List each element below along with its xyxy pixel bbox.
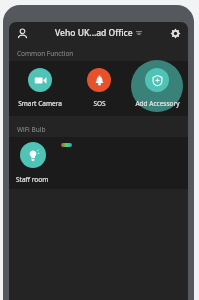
button[interactable]: Settings <box>166 24 184 42</box>
button[interactable]: SOS <box>71 61 127 116</box>
staticText: Common Function <box>17 49 74 58</box>
button[interactable]: Add Accessory <box>129 61 185 116</box>
staticText: SOS <box>93 99 106 108</box>
staticText: WiFi Bulb <box>17 125 46 134</box>
staticText: Veho UK...ad Office <box>55 27 133 39</box>
staticText: Staff room <box>16 175 49 184</box>
button[interactable]: Smart Camera <box>12 61 68 116</box>
button[interactable]: Account <box>13 24 31 42</box>
button[interactable]: Staff room <box>16 142 70 184</box>
staticText: Smart Camera <box>18 99 62 108</box>
button[interactable]: Veho UK...ad Office <box>52 25 145 41</box>
staticText: Add Accessory <box>135 99 180 108</box>
